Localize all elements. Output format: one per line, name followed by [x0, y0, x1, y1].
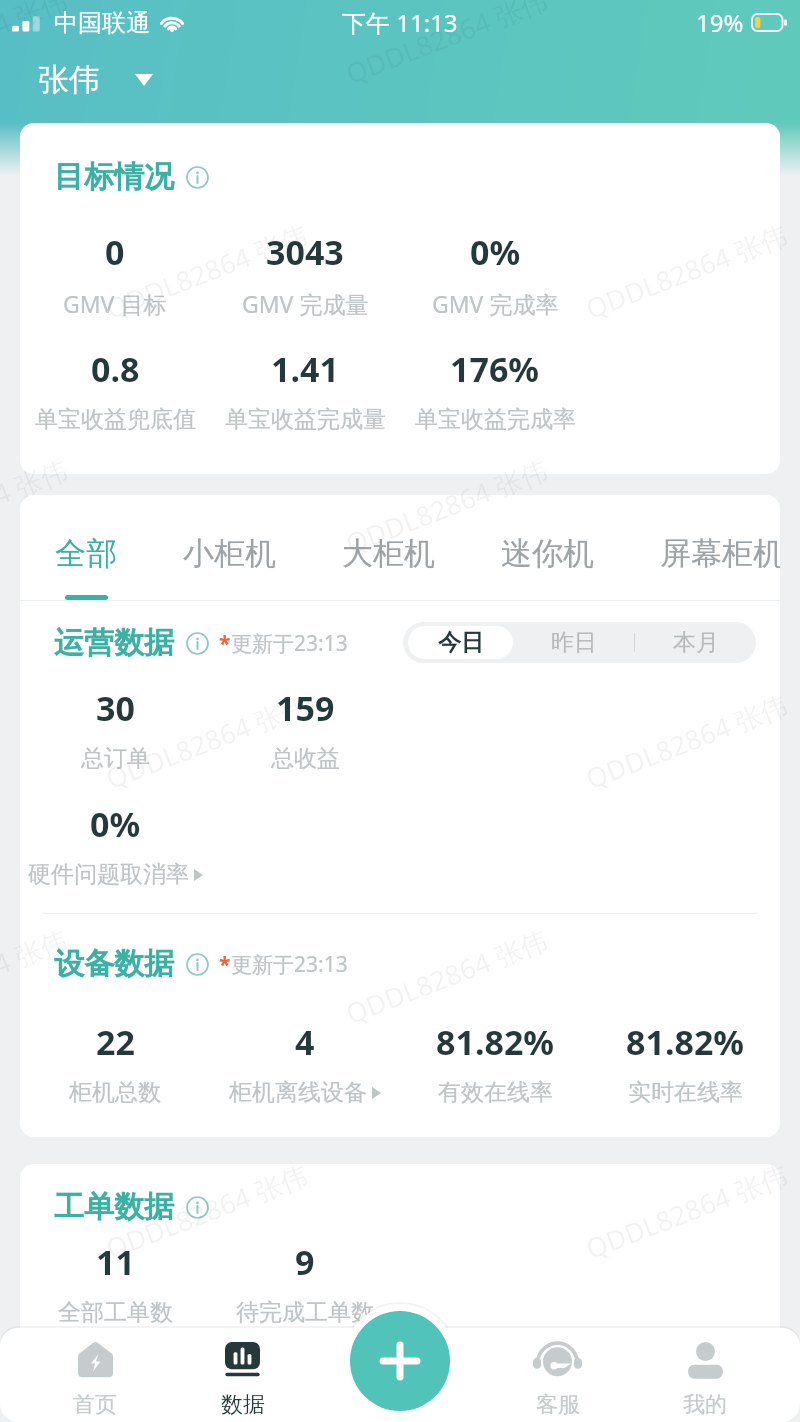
staticText: 4 [295, 1019, 315, 1065]
button[interactable]: 本月 [635, 628, 756, 657]
staticText: QDDL82864 张伟 [0, 921, 73, 1032]
staticText: 更新于23:13 [231, 629, 348, 658]
staticText: 大柜机 [342, 534, 435, 573]
button[interactable]: 我的 [610, 1328, 800, 1422]
staticText: QDDL82864 张伟 [0, 451, 73, 562]
staticText: 3043 [266, 229, 344, 275]
button[interactable]: More information [186, 632, 209, 655]
staticText: 柜机离线设备 [229, 1078, 367, 1107]
staticText: 11 [96, 1239, 135, 1285]
button[interactable]: 昨日 [513, 628, 634, 657]
staticText: 待完成工单数 [236, 1298, 374, 1327]
button[interactable]: More information [186, 166, 209, 189]
staticText: 运营数据 [54, 624, 174, 662]
staticText: QDDL82864 张伟 [580, 216, 792, 327]
button[interactable]: 今日 [408, 626, 513, 659]
button[interactable]: 屏幕柜机 [660, 534, 780, 600]
staticText: 9 [295, 1239, 315, 1285]
button[interactable]: 4 [210, 1019, 400, 1107]
staticText: 今日 [438, 628, 484, 657]
staticText: QDDL82864 张伟 [340, 1391, 552, 1422]
staticText: 目标情况 [54, 158, 174, 196]
staticText: 81.82% [436, 1019, 555, 1065]
staticText: 总订单 [81, 744, 150, 773]
staticText: * [219, 950, 231, 979]
staticText: 迷你机 [501, 534, 594, 573]
staticText: 单宝收益完成量 [225, 405, 386, 434]
staticText: 张伟 [38, 60, 100, 99]
staticText: 小柜机 [183, 534, 276, 573]
staticText: 柜机总数 [69, 1078, 161, 1107]
staticText: QDDL82864 张伟 [100, 686, 312, 797]
staticText: 本月 [673, 628, 719, 657]
staticText: QDDL82864 张伟 [100, 216, 312, 327]
staticText: 更新于23:13 [231, 950, 348, 979]
staticText: 1.41 [271, 346, 339, 392]
staticText: 单宝收益兜底值 [35, 405, 196, 434]
button[interactable]: 客服 [505, 1328, 610, 1422]
button[interactable]: 首页 [0, 1328, 190, 1422]
button[interactable]: 大柜机 [342, 534, 435, 600]
staticText: 数据 [221, 1391, 265, 1419]
button[interactable]: More information [186, 953, 209, 976]
staticText: QDDL82864 张伟 [0, 0, 73, 92]
button[interactable]: 0% [20, 801, 210, 889]
staticText: 81.82% [626, 1019, 745, 1065]
staticText: * [219, 629, 231, 658]
staticText: 176% [450, 346, 540, 392]
button[interactable]: More information [186, 1196, 209, 1219]
button[interactable]: 张伟 [38, 52, 171, 107]
button[interactable]: 小柜机 [183, 534, 276, 600]
staticText: 下午 11:13 [342, 6, 458, 39]
staticText: 22 [96, 1019, 135, 1065]
staticText: 首页 [73, 1391, 117, 1419]
staticText: 有效在线率 [438, 1078, 553, 1107]
staticText: QDDL82864 张伟 [340, 921, 552, 1032]
staticText: 客服 [536, 1391, 580, 1419]
staticText: 19% [696, 6, 744, 39]
staticText: QDDL82864 张伟 [100, 1156, 312, 1267]
staticText: 昨日 [551, 628, 597, 657]
staticText: 0% [90, 801, 141, 847]
staticText: 159 [276, 685, 335, 731]
staticText: 0% [470, 229, 521, 275]
staticText: 硬件问题取消率 [28, 860, 189, 889]
staticText: QDDL82864 张伟 [580, 1156, 792, 1267]
staticText: 中国联通 [54, 8, 150, 38]
staticText: 单宝收益完成率 [415, 405, 576, 434]
button[interactable]: Add [350, 1311, 450, 1411]
staticText: QDDL82864 张伟 [580, 686, 792, 797]
staticText: 全部 [55, 534, 117, 573]
staticText: GMV 目标 [63, 288, 167, 319]
staticText: QDDL82864 张伟 [340, 0, 552, 92]
staticText: 实时在线率 [628, 1078, 743, 1107]
staticText: 30 [96, 685, 135, 731]
staticText: 0.8 [91, 346, 140, 392]
button[interactable]: 迷你机 [501, 534, 594, 600]
staticText: 0 [105, 229, 125, 275]
button[interactable]: 全部 [55, 534, 117, 600]
staticText: 屏幕柜机 [660, 534, 780, 573]
staticText: 全部工单数 [58, 1298, 173, 1327]
staticText: 工单数据 [54, 1188, 174, 1226]
staticText: 我的 [683, 1391, 727, 1419]
staticText: GMV 完成量 [242, 288, 369, 319]
staticText: 设备数据 [54, 945, 174, 983]
button[interactable]: 数据 [190, 1328, 295, 1422]
staticText: QDDL82864 张伟 [340, 451, 552, 562]
staticText: 总收益 [271, 744, 340, 773]
staticText: GMV 完成率 [432, 288, 559, 319]
